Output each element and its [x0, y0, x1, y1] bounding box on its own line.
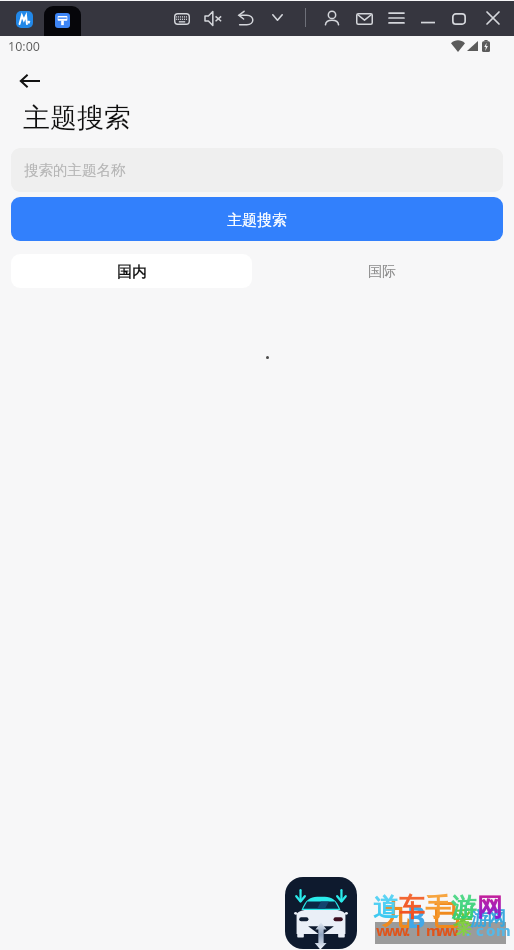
button[interactable]: Mail	[350, 1, 379, 35]
button[interactable]: 主题搜索	[11, 197, 503, 241]
staticText: 网	[487, 907, 504, 931]
staticText: 搜索的主题名称	[24, 161, 126, 179]
staticText: w	[396, 920, 406, 940]
button[interactable]: More options	[266, 1, 289, 35]
staticText: 游	[470, 907, 487, 931]
staticText: w	[376, 920, 386, 940]
staticText: 已	[432, 898, 457, 933]
staticText: w	[446, 920, 456, 940]
staticText: l	[416, 920, 426, 940]
button[interactable]: Back	[9, 60, 51, 102]
button[interactable]: Back	[232, 1, 260, 35]
staticText: 10:00	[8, 38, 40, 55]
button[interactable]: Close	[481, 1, 505, 35]
staticText: .	[466, 920, 476, 940]
staticText: 手	[425, 891, 451, 923]
staticText: 主题搜索	[23, 101, 131, 135]
staticText: m	[496, 920, 506, 940]
staticText: w	[436, 920, 446, 940]
staticText: 游	[451, 891, 477, 923]
staticText: 国内	[117, 263, 147, 282]
button[interactable]: Emulator tab	[44, 6, 81, 36]
button[interactable]: 国际	[261, 255, 503, 289]
staticText: m	[426, 920, 436, 940]
button[interactable]: 国内	[11, 254, 252, 288]
staticText: 主题搜索	[227, 211, 287, 230]
button[interactable]: Menu	[383, 1, 410, 35]
button[interactable]: Keyboard	[168, 1, 196, 35]
staticText: 道	[373, 891, 399, 923]
button[interactable]: Account	[318, 1, 346, 35]
button[interactable]: App logo	[16, 11, 33, 28]
button[interactable]: Mute	[199, 1, 228, 35]
staticText: w	[386, 920, 396, 940]
staticText: c	[476, 920, 486, 940]
staticText: 九	[382, 898, 407, 933]
staticText: 网	[477, 891, 503, 923]
staticText: o	[486, 920, 496, 940]
button[interactable]: Maximize	[446, 1, 472, 35]
staticText: 采	[456, 920, 466, 939]
staticText: .	[406, 920, 416, 940]
staticText: 国际	[368, 263, 396, 281]
button[interactable]: 搜索的主题名称	[11, 148, 503, 192]
staticText: B	[407, 898, 432, 936]
button[interactable]: Minimize	[415, 1, 441, 35]
staticText: 采	[453, 907, 470, 931]
staticText: 车	[399, 891, 425, 923]
